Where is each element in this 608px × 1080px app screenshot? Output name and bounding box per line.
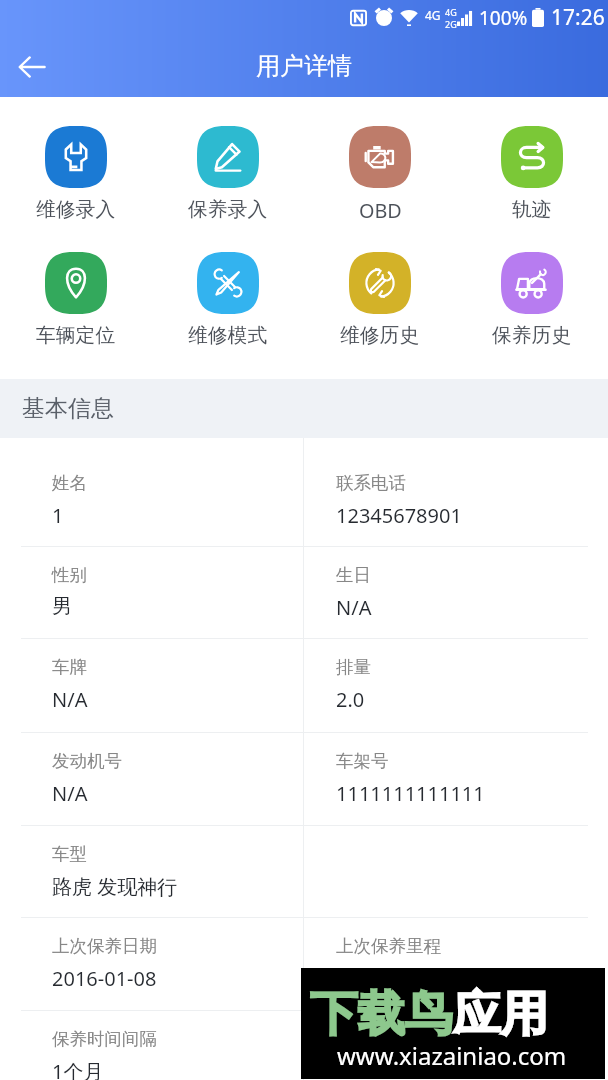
staticText: 100%	[479, 5, 528, 31]
staticText: 男	[52, 594, 72, 619]
staticText: 生日	[336, 564, 371, 586]
staticText: 1	[52, 502, 64, 529]
staticText: N/A	[52, 686, 88, 713]
staticText: 17:26	[551, 3, 605, 32]
staticText: 1111111111111	[336, 780, 485, 807]
button[interactable]: 维修模式	[152, 252, 304, 348]
staticText: 保养录入	[188, 197, 268, 222]
staticText: 性别	[52, 564, 87, 586]
button[interactable]: 维修历史	[304, 252, 456, 348]
staticText: 维修模式	[188, 323, 268, 348]
staticText: 联系电话	[336, 472, 406, 494]
staticText: 2G	[445, 18, 457, 30]
staticText: 2.0	[336, 686, 365, 713]
staticText: 姓名	[52, 472, 87, 494]
staticText: www.xiazainiao.com	[337, 1039, 567, 1072]
button[interactable]: 发动机号	[0, 733, 303, 826]
staticText: 车辆定位	[36, 323, 116, 348]
staticText: 应用	[453, 984, 548, 1044]
button[interactable]: 保养时间间隔	[0, 1011, 303, 1080]
staticText: 基本信息	[22, 394, 114, 423]
button[interactable]: 车牌	[0, 639, 303, 733]
button[interactable]: 车辆定位	[0, 252, 152, 348]
staticText: 下载鸟	[310, 984, 453, 1044]
staticText: 2016-01-08	[52, 965, 157, 992]
staticText: 4G	[445, 6, 457, 18]
button[interactable]: 性别	[0, 547, 303, 639]
staticText: 上次保养里程	[336, 935, 441, 957]
staticText: 发动机号	[52, 750, 122, 772]
button[interactable]: 上次保养日期	[0, 918, 303, 1011]
button[interactable]: 保养录入	[152, 126, 304, 222]
staticText: 轨迹	[512, 197, 552, 222]
staticText: 车架号	[336, 750, 389, 772]
button[interactable]: 上次保养里程	[304, 918, 608, 1011]
staticText: 用户详情	[256, 51, 352, 81]
staticText: 车型	[52, 843, 87, 865]
staticText: N/A	[336, 594, 372, 621]
staticText: 保养历史	[492, 323, 572, 348]
staticText: N/A	[52, 780, 88, 807]
button[interactable]: 排量	[304, 639, 608, 733]
staticText: 1个月	[52, 1058, 104, 1080]
button[interactable]: 车架号	[304, 733, 608, 826]
staticText: OBD	[359, 197, 402, 224]
staticText: 12345678901	[336, 502, 462, 529]
button[interactable]: 车型	[0, 826, 303, 918]
button[interactable]: 轨迹	[456, 126, 608, 222]
staticText: 排量	[336, 656, 371, 678]
staticText: 上次保养日期	[52, 935, 157, 957]
button[interactable]: 生日	[304, 547, 608, 639]
button[interactable]: 维修录入	[0, 126, 152, 222]
button[interactable]: 保养历史	[456, 252, 608, 348]
staticText: 路虎 发现神行	[52, 873, 178, 900]
staticText: 4G	[425, 7, 441, 23]
button[interactable]: 联系电话	[304, 438, 608, 547]
staticText: 保养时间间隔	[52, 1028, 157, 1050]
button[interactable]: Back	[6, 41, 58, 93]
button[interactable]: OBD	[304, 126, 456, 224]
staticText: 维修录入	[36, 197, 116, 222]
button[interactable]: 姓名	[0, 438, 303, 547]
staticText: 车牌	[52, 656, 87, 678]
staticText: 维修历史	[340, 323, 420, 348]
